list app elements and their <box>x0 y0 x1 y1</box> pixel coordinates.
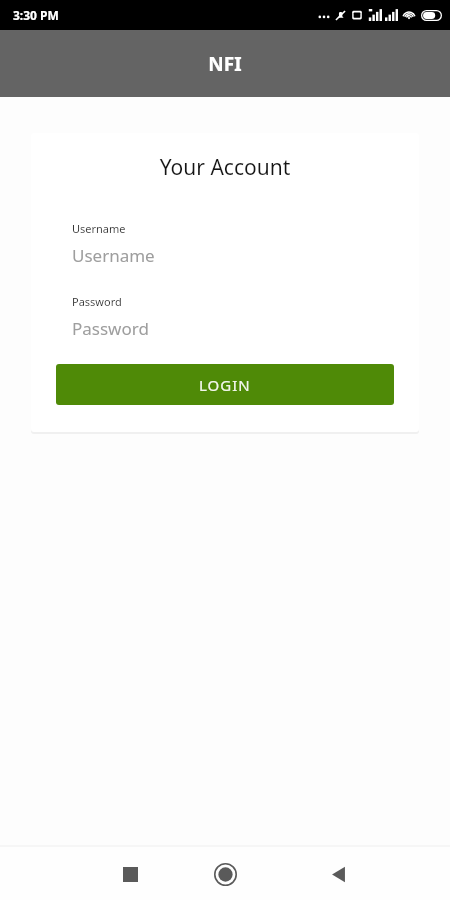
staticText: Password <box>72 294 122 309</box>
staticText: Username <box>72 221 126 236</box>
staticText: NFI <box>208 51 242 77</box>
button[interactable]: Home <box>203 852 247 896</box>
staticText: Password <box>72 317 149 340</box>
staticText: Your Account <box>31 153 419 182</box>
staticText: 3:30 PM <box>13 7 59 23</box>
button[interactable]: Back <box>318 854 358 894</box>
button[interactable]: Username <box>72 221 378 267</box>
button[interactable]: Recent apps <box>110 854 150 894</box>
staticText: Username <box>72 244 155 267</box>
button[interactable]: Password <box>72 294 378 340</box>
button[interactable]: LOGIN <box>56 364 394 405</box>
staticText: LOGIN <box>199 375 251 395</box>
